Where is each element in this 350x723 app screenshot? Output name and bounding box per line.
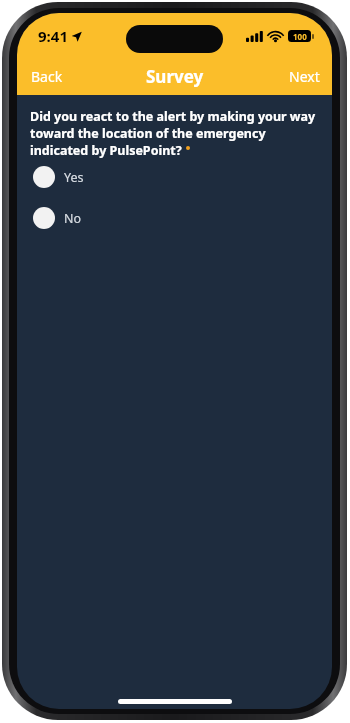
staticText: Next <box>289 67 320 86</box>
button[interactable]: Next <box>279 61 332 92</box>
staticText: Back <box>31 67 63 86</box>
button[interactable]: No <box>30 205 319 231</box>
button[interactable]: Back <box>17 61 73 92</box>
staticText: 100 <box>293 31 307 42</box>
staticText: 9:41 <box>38 26 68 46</box>
staticText: Did you react to the alert by making you… <box>30 108 319 159</box>
staticText: Yes <box>64 169 84 186</box>
button[interactable]: Yes <box>30 164 319 190</box>
staticText: Survey <box>146 65 204 88</box>
staticText: No <box>64 210 82 227</box>
